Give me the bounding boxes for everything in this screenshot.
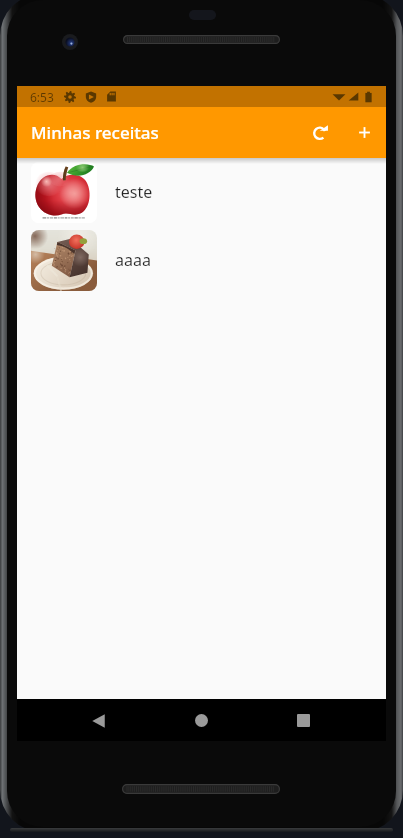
button[interactable]: Home bbox=[184, 703, 219, 738]
staticText: 6:53 bbox=[30, 89, 54, 105]
button[interactable]: Recent apps bbox=[286, 703, 321, 738]
button[interactable]: Refresh bbox=[301, 107, 342, 158]
button[interactable]: aaaa bbox=[17, 226, 386, 294]
staticText: aaaa bbox=[115, 249, 151, 271]
staticText: Minhas receitas bbox=[31, 121, 159, 144]
staticText: teste bbox=[115, 181, 153, 203]
button[interactable]: Add recipe bbox=[342, 107, 386, 158]
button[interactable]: Back bbox=[81, 703, 116, 738]
button[interactable]: teste bbox=[17, 158, 386, 226]
